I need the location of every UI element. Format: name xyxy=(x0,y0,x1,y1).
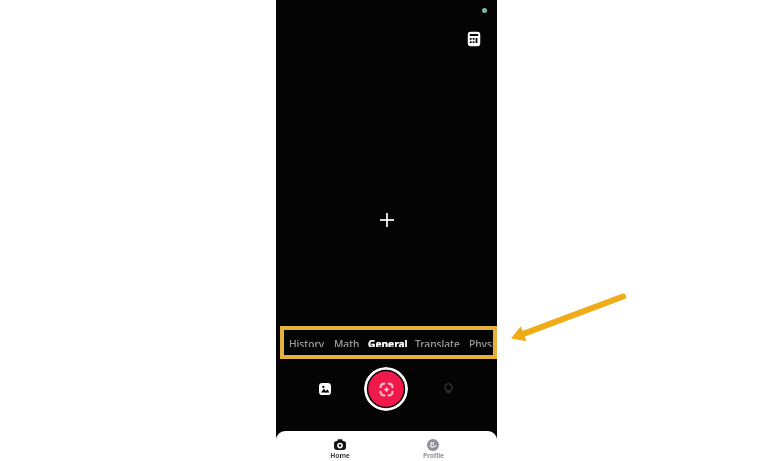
staticText: History xyxy=(289,337,325,347)
staticText: Home xyxy=(330,451,350,460)
button[interactable]: Translate xyxy=(415,337,460,347)
button[interactable]: Flash xyxy=(441,381,456,396)
staticText: Profile xyxy=(423,451,444,460)
button[interactable]: Capture xyxy=(364,367,408,411)
button[interactable]: Calculator xyxy=(466,31,482,47)
button[interactable]: Home xyxy=(320,431,360,461)
staticText: Physi xyxy=(469,337,495,347)
button[interactable]: Math xyxy=(334,337,360,347)
button[interactable]: Physi xyxy=(469,337,495,347)
button[interactable]: General xyxy=(368,337,408,347)
staticText: Math xyxy=(334,337,360,347)
staticText: Translate xyxy=(415,337,460,347)
button[interactable]: History xyxy=(289,337,325,347)
button[interactable]: Profile xyxy=(413,431,453,461)
button[interactable]: Gallery xyxy=(319,383,331,395)
staticText: General xyxy=(368,337,408,347)
